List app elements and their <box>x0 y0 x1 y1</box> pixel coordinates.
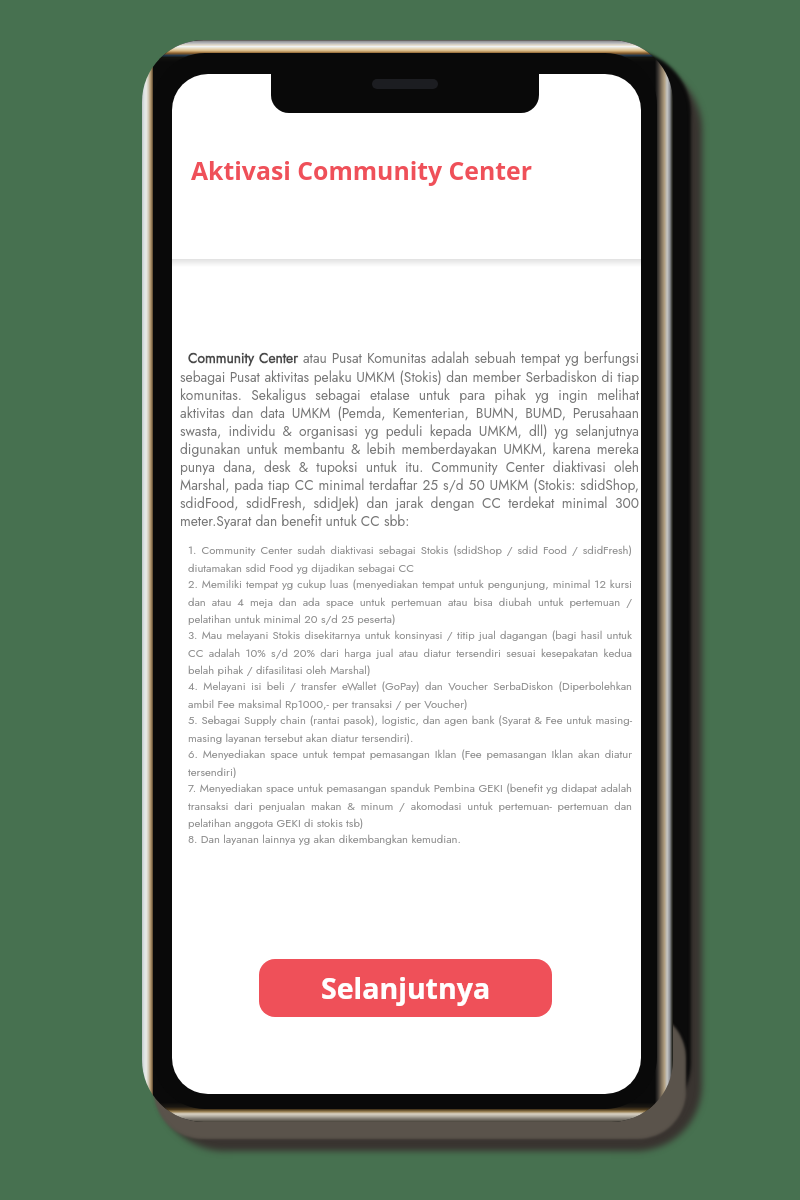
staticText: 6. Menyediakan space untuk tempat pemasa… <box>188 746 632 780</box>
staticText: 1. Community Center sudah diaktivasi seb… <box>188 542 632 576</box>
staticText: 8. Dan layanan lainnya yg akan dikembang… <box>188 831 461 847</box>
staticText: 2. Memiliki tempat yg cukup luas (menyed… <box>188 576 632 627</box>
staticText: 7. Menyediakan space untuk pemasangan sp… <box>188 780 632 831</box>
button[interactable]: Selanjutnya <box>259 959 552 1017</box>
staticText: Community Center atau Pusat Komunitas ad… <box>180 348 639 531</box>
staticText: Selanjutnya <box>321 969 491 1008</box>
staticText: 4. Melayani isi beli / transfer eWallet … <box>188 678 632 712</box>
staticText: Aktivasi Community Center <box>191 153 532 187</box>
staticText: 3. Mau melayani Stokis disekitarnya untu… <box>188 627 632 678</box>
staticText: 5. Sebagai Supply chain (rantai pasok), … <box>188 712 632 746</box>
